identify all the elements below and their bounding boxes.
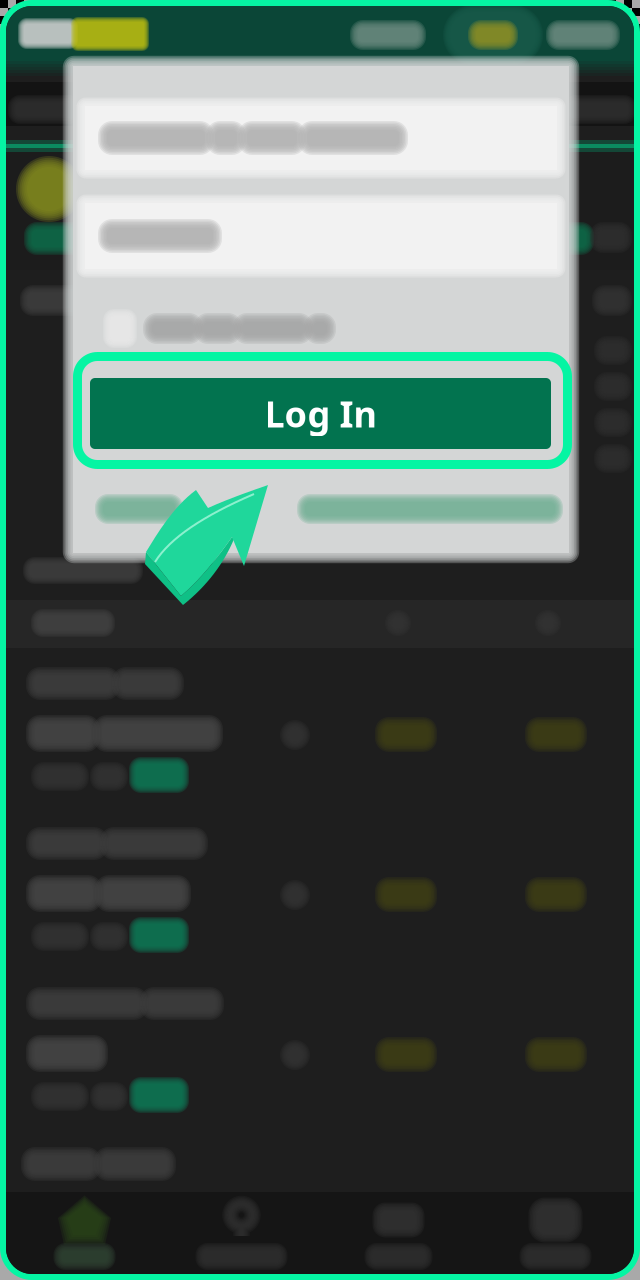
staticText: Log In xyxy=(264,390,376,437)
button[interactable]: Account xyxy=(477,1192,634,1274)
button[interactable]: Join Now xyxy=(95,494,183,524)
button[interactable]: Home xyxy=(6,1192,163,1274)
button[interactable]: All Sports xyxy=(163,1192,320,1274)
button[interactable]: In-Play xyxy=(320,1192,477,1274)
button[interactable]: Having trouble logging in? xyxy=(297,494,563,524)
button[interactable]: Log In xyxy=(90,378,551,449)
